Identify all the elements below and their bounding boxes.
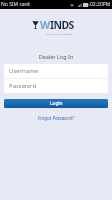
staticText: Password bbox=[9, 82, 37, 90]
button[interactable]: Password bbox=[4, 79, 108, 93]
staticText: Login bbox=[50, 100, 63, 107]
staticText: Username bbox=[9, 67, 39, 75]
staticText: W bbox=[40, 18, 50, 32]
staticText: 02:20PM bbox=[90, 1, 111, 8]
staticText: Secure Your Mobile Life bbox=[46, 32, 73, 35]
other: WINDS logo bbox=[32, 21, 39, 29]
button[interactable]: Login bbox=[4, 99, 108, 108]
staticText: Dealer Log In bbox=[0, 53, 112, 60]
button[interactable]: Forgot Password? bbox=[4, 115, 108, 121]
staticText: INDS bbox=[50, 18, 74, 32]
staticText: No SIM card bbox=[1, 1, 30, 8]
button[interactable]: Username bbox=[4, 64, 108, 78]
